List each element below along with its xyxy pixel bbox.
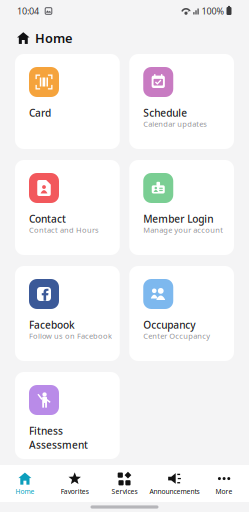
button[interactable]: Favorites	[50, 472, 100, 496]
staticText: Home	[15, 487, 34, 496]
button[interactable]: Occupancy	[129, 266, 234, 361]
staticText: Calendar updates	[143, 119, 207, 129]
staticText: Favorites	[61, 487, 89, 496]
staticText: Announcements	[149, 487, 199, 496]
button[interactable]: Schedule	[129, 54, 234, 149]
staticText: Contact	[29, 212, 66, 226]
button[interactable]: More	[199, 472, 249, 496]
staticText: Services	[111, 487, 137, 496]
staticText: Card	[29, 106, 51, 120]
staticText: Member Login	[143, 212, 213, 226]
staticText: Fitness Assessment	[29, 424, 88, 452]
button[interactable]: Home	[0, 472, 50, 496]
staticText: Facebook	[29, 318, 75, 332]
staticText: Follow us on Facebook	[29, 331, 112, 341]
staticText: Center Occupancy	[143, 331, 210, 341]
button[interactable]: Facebook	[15, 266, 120, 361]
button[interactable]: Announcements	[149, 472, 199, 496]
staticText: Schedule	[143, 106, 187, 120]
button[interactable]: Card	[15, 54, 120, 149]
staticText: Occupancy	[143, 318, 195, 332]
staticText: Home	[35, 29, 72, 47]
button[interactable]: Member Login	[129, 160, 234, 255]
staticText: 10:04	[17, 5, 39, 17]
staticText: Contact and Hours	[29, 225, 99, 235]
staticText: 100%	[201, 5, 224, 17]
button[interactable]: Fitness Assessment	[15, 372, 120, 459]
button[interactable]: Contact	[15, 160, 120, 255]
staticText: Manage your account	[143, 225, 223, 235]
staticText: More	[216, 487, 233, 496]
button[interactable]: Services	[100, 472, 149, 496]
